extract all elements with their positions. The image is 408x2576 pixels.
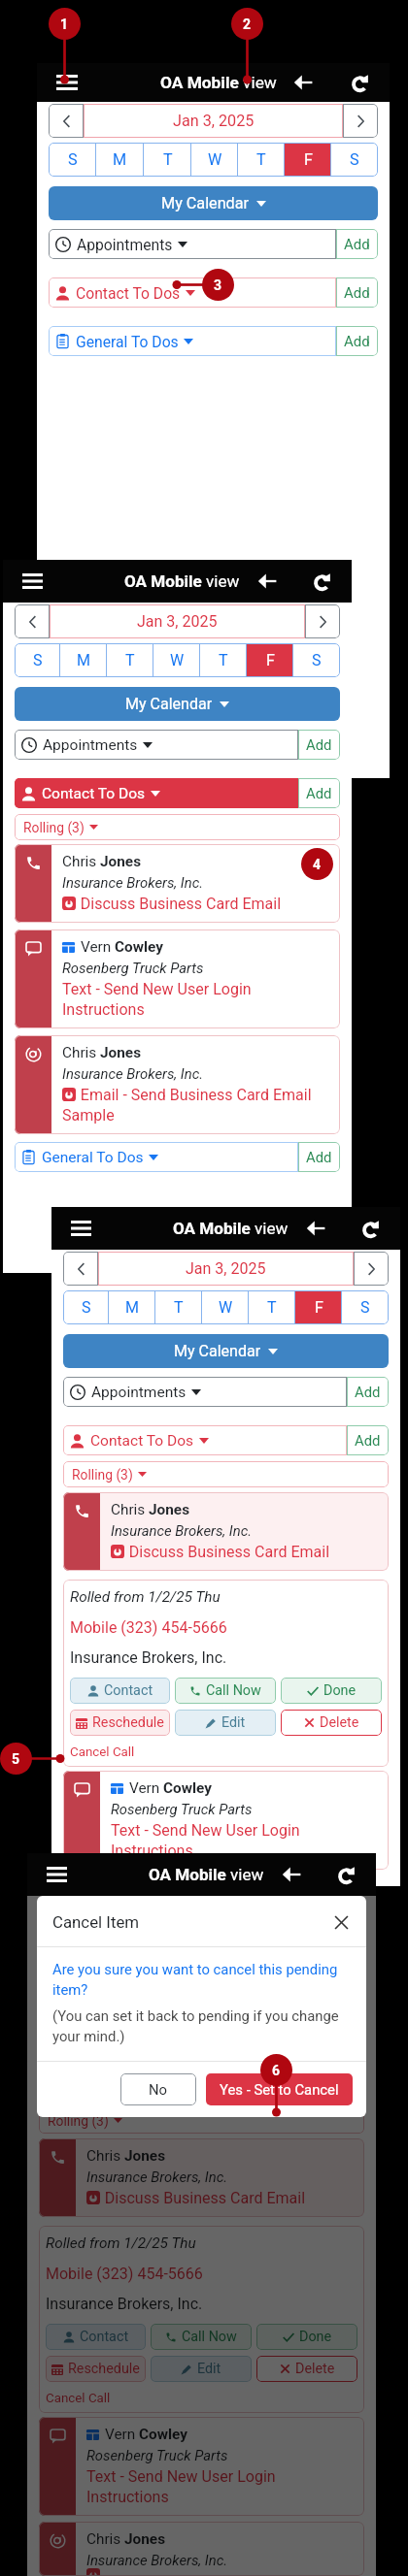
- button[interactable]: Previous day: [49, 104, 84, 138]
- button[interactable]: Add: [336, 229, 378, 259]
- button[interactable]: S: [15, 643, 60, 677]
- button[interactable]: Appointments: [70, 1377, 347, 1407]
- button[interactable]: Contact: [70, 1678, 170, 1704]
- button[interactable]: Add: [347, 1377, 389, 1407]
- button[interactable]: Rolling (3): [23, 814, 340, 840]
- button[interactable]: S: [49, 143, 96, 177]
- button[interactable]: Delete: [256, 2356, 357, 2382]
- button[interactable]: Chris Jones: [39, 2138, 364, 2217]
- button[interactable]: General To Dos: [21, 1142, 298, 1172]
- button[interactable]: T: [107, 643, 153, 677]
- button[interactable]: Contact To Dos: [21, 778, 298, 808]
- button[interactable]: Refresh: [292, 560, 352, 603]
- button[interactable]: Rolling (3): [72, 1461, 389, 1487]
- button[interactable]: Yes - Set to Cancel: [220, 2073, 339, 2105]
- button[interactable]: My Calendar: [15, 687, 340, 721]
- button[interactable]: Chris Jones: [15, 1035, 340, 1134]
- button[interactable]: Contact To Dos: [46, 2071, 323, 2102]
- button[interactable]: Previous day: [15, 604, 50, 638]
- button[interactable]: Jan 3, 2025: [74, 1898, 329, 1932]
- button[interactable]: Refresh: [341, 1207, 400, 1250]
- button[interactable]: Jan 3, 2025: [84, 104, 343, 138]
- button[interactable]: F: [271, 1937, 318, 1971]
- button[interactable]: W: [202, 1290, 249, 1324]
- button[interactable]: Edit: [151, 2356, 252, 2382]
- button[interactable]: T: [200, 643, 247, 677]
- button[interactable]: Close: [329, 1910, 353, 1934]
- button[interactable]: Chris Jones: [63, 1492, 389, 1571]
- button[interactable]: F: [295, 1290, 342, 1324]
- button[interactable]: Next day: [343, 104, 378, 138]
- button[interactable]: Add: [323, 2023, 364, 2053]
- button[interactable]: Back: [277, 63, 329, 102]
- button[interactable]: W: [191, 143, 238, 177]
- button[interactable]: S: [293, 643, 340, 677]
- button[interactable]: Back: [265, 1853, 317, 1896]
- button[interactable]: F: [285, 143, 331, 177]
- button[interactable]: Add: [336, 326, 378, 356]
- button[interactable]: Add: [336, 277, 378, 308]
- button[interactable]: W: [178, 1937, 224, 1971]
- button[interactable]: Back: [241, 560, 292, 603]
- button[interactable]: Menu: [27, 1853, 85, 1896]
- button[interactable]: Edit: [175, 1710, 276, 1736]
- button[interactable]: Menu: [51, 1207, 110, 1250]
- button[interactable]: Add: [298, 1142, 340, 1172]
- button[interactable]: Appointments: [55, 229, 336, 259]
- button[interactable]: M: [96, 143, 144, 177]
- button[interactable]: Refresh: [329, 63, 390, 102]
- button[interactable]: T: [238, 143, 285, 177]
- button[interactable]: Call Now: [175, 1678, 276, 1704]
- button[interactable]: General To Dos: [55, 326, 336, 356]
- button[interactable]: T: [224, 1937, 271, 1971]
- button[interactable]: Refresh: [317, 1853, 376, 1896]
- button[interactable]: Done: [256, 2324, 357, 2350]
- button[interactable]: Cancel Call: [70, 1745, 135, 1760]
- button[interactable]: Contact To Dos: [70, 1425, 347, 1455]
- button[interactable]: Delete: [281, 1710, 382, 1736]
- button[interactable]: Previous day: [63, 1252, 98, 1286]
- button[interactable]: Menu: [3, 560, 61, 603]
- button[interactable]: Jan 3, 2025: [98, 1252, 354, 1286]
- button[interactable]: Call Now: [151, 2324, 252, 2350]
- button[interactable]: Add: [298, 778, 340, 808]
- button[interactable]: Appointments: [21, 730, 298, 760]
- button[interactable]: Rolling (3): [48, 2107, 364, 2134]
- button[interactable]: S: [331, 143, 378, 177]
- button[interactable]: Contact To Dos: [55, 277, 336, 308]
- button[interactable]: My Calendar: [39, 1980, 364, 2014]
- button[interactable]: Back: [289, 1207, 341, 1250]
- button[interactable]: Jan 3, 2025: [50, 604, 305, 638]
- button[interactable]: Chris Jones: [15, 844, 340, 923]
- button[interactable]: M: [85, 1937, 131, 1971]
- button[interactable]: Vern Cowley: [15, 929, 340, 1028]
- button[interactable]: Add: [298, 730, 340, 760]
- button[interactable]: Vern Cowley: [63, 1771, 389, 1870]
- button[interactable]: Reschedule: [46, 2356, 146, 2382]
- button[interactable]: S: [39, 1937, 85, 1971]
- button[interactable]: F: [247, 643, 293, 677]
- button[interactable]: T: [144, 143, 191, 177]
- button[interactable]: T: [131, 1937, 178, 1971]
- button[interactable]: Cancel Call: [46, 2391, 111, 2406]
- button[interactable]: M: [60, 643, 107, 677]
- button[interactable]: T: [155, 1290, 202, 1324]
- button[interactable]: Previous day: [39, 1898, 74, 1932]
- button[interactable]: M: [109, 1290, 155, 1324]
- button[interactable]: T: [249, 1290, 295, 1324]
- button[interactable]: W: [153, 643, 200, 677]
- button[interactable]: Next day: [329, 1898, 364, 1932]
- button[interactable]: Chris Jones: [39, 2522, 364, 2576]
- button[interactable]: Appointments: [46, 2023, 323, 2053]
- button[interactable]: Next day: [305, 604, 340, 638]
- button[interactable]: Next day: [354, 1252, 389, 1286]
- button[interactable]: Add: [347, 1425, 389, 1455]
- button[interactable]: Reschedule: [70, 1710, 170, 1736]
- button[interactable]: Contact: [46, 2324, 146, 2350]
- button[interactable]: S: [318, 1937, 364, 1971]
- button[interactable]: Done: [281, 1678, 382, 1704]
- button[interactable]: S: [342, 1290, 389, 1324]
- button[interactable]: Vern Cowley: [39, 2417, 364, 2516]
- button[interactable]: Menu: [37, 63, 96, 102]
- button[interactable]: Add: [323, 2071, 364, 2102]
